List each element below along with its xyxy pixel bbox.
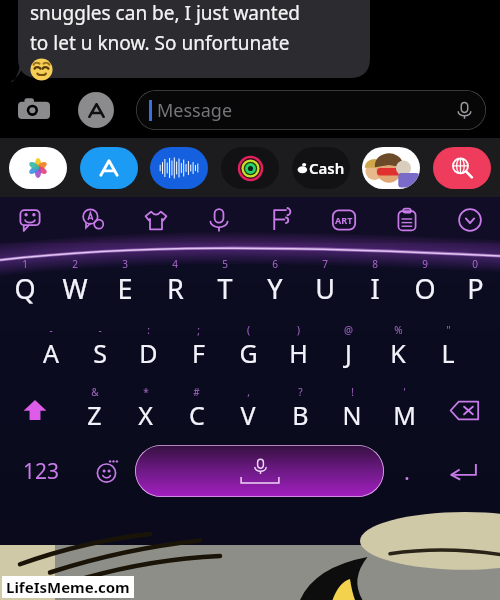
button[interactable]: Fitness — [218, 145, 282, 191]
button[interactable]: 8 — [350, 257, 400, 309]
button[interactable]: , — [222, 385, 274, 435]
button[interactable]: 2 — [50, 257, 100, 309]
button[interactable]: 1 — [0, 257, 50, 309]
staticText: Z — [87, 398, 102, 432]
button[interactable]: @ — [323, 323, 373, 373]
staticText: I — [370, 270, 380, 307]
button[interactable]: Image search — [430, 145, 494, 191]
button[interactable]: ? — [274, 385, 326, 435]
button[interactable]: App Store — [76, 90, 116, 130]
staticText: snuggles can be, I just wanted — [30, 0, 301, 26]
staticText: G — [239, 336, 258, 370]
button[interactable]: Stickers — [8, 198, 52, 242]
button[interactable]: Photos — [6, 145, 70, 191]
button[interactable]: Fonts — [259, 198, 303, 242]
staticText: " — [446, 323, 451, 337]
staticText: - — [98, 323, 102, 337]
button[interactable]: Memoji — [359, 145, 423, 191]
button[interactable]: Voice input — [197, 198, 241, 242]
staticText: R — [167, 270, 184, 307]
staticText: 7 — [322, 257, 328, 271]
button[interactable]: Collapse — [448, 198, 492, 242]
button[interactable]: Emoji — [78, 443, 135, 499]
staticText: : — [147, 323, 150, 337]
staticText: 5 — [222, 257, 228, 271]
button[interactable]: Voice memo — [147, 145, 211, 191]
staticText: 1 — [22, 257, 28, 271]
staticText: ; — [197, 323, 200, 337]
staticText: - — [49, 323, 53, 337]
button[interactable]: Camera — [14, 90, 54, 130]
button[interactable]: Art — [322, 198, 366, 242]
staticText: Q — [14, 270, 36, 307]
staticText: ART — [335, 214, 353, 226]
staticText: 0 — [472, 257, 478, 271]
button[interactable]: Return — [430, 443, 496, 499]
staticText: 3 — [122, 257, 128, 271]
button[interactable]: & — [69, 385, 120, 435]
button[interactable]: Shift — [0, 385, 69, 435]
staticText: H — [289, 336, 308, 370]
staticText: K — [390, 336, 406, 370]
button[interactable]: - — [26, 323, 75, 373]
button[interactable]: " — [423, 323, 473, 373]
staticText: ' — [403, 385, 406, 399]
staticText: 123 — [23, 457, 60, 486]
staticText: 6 — [272, 257, 278, 271]
button[interactable]: ' — [378, 385, 430, 435]
staticText: C — [189, 398, 205, 432]
staticText: ? — [298, 385, 303, 399]
button[interactable]: - — [75, 323, 124, 373]
button[interactable]: Space — [135, 445, 384, 497]
staticText: A — [43, 336, 59, 370]
button[interactable]: Message — [136, 90, 486, 130]
staticText: J — [345, 336, 352, 370]
staticText: 2 — [72, 257, 78, 271]
button[interactable]: Themes — [134, 198, 178, 242]
staticText: 9 — [422, 257, 428, 271]
button[interactable]: 5 — [200, 257, 250, 309]
button[interactable]: : — [124, 323, 173, 373]
button[interactable]: ) — [273, 323, 323, 373]
staticText: L — [441, 336, 455, 370]
staticText: # — [193, 385, 200, 399]
button[interactable]: 3 — [100, 257, 150, 309]
staticText: D — [139, 336, 158, 370]
button[interactable]: Apple Cash — [289, 145, 353, 191]
staticText: , — [247, 385, 250, 399]
button[interactable]: 9 — [400, 257, 450, 309]
button[interactable]: Translate — [71, 198, 115, 242]
staticText: N — [342, 398, 362, 432]
button[interactable]: . — [384, 443, 430, 499]
staticText: to let u know. So unfortunate — [30, 30, 290, 56]
staticText: O — [414, 270, 436, 307]
staticText: & — [91, 385, 99, 399]
staticText: E — [117, 270, 133, 307]
button[interactable]: ( — [223, 323, 273, 373]
button[interactable]: 0 — [450, 257, 500, 309]
staticText: U — [315, 270, 335, 307]
button[interactable]: % — [373, 323, 423, 373]
staticText: % — [394, 323, 403, 337]
button[interactable]: # — [171, 385, 222, 435]
button[interactable]: Clipboard — [385, 198, 429, 242]
staticText: S — [93, 336, 107, 370]
button[interactable]: ; — [173, 323, 223, 373]
button[interactable]: ! — [326, 385, 378, 435]
staticText: * — [143, 385, 149, 399]
button[interactable]: 7 — [300, 257, 350, 309]
staticText: 4 — [172, 257, 178, 271]
staticText: Message — [157, 98, 233, 123]
button[interactable]: * — [120, 385, 171, 435]
button[interactable]: 6 — [250, 257, 300, 309]
staticText: X — [138, 398, 153, 432]
staticText: W — [62, 270, 88, 307]
staticText: M — [393, 398, 416, 432]
staticText: ( — [247, 323, 250, 337]
button[interactable]: 4 — [150, 257, 200, 309]
button[interactable]: Backspace — [430, 385, 500, 435]
button[interactable]: App Store — [77, 145, 141, 191]
staticText: V — [240, 398, 256, 432]
staticText: . — [404, 456, 410, 486]
button[interactable]: 123 — [4, 443, 78, 499]
